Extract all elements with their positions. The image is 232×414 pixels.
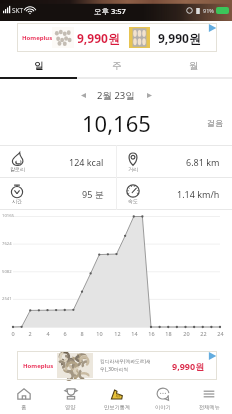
staticText: 걸음 xyxy=(207,118,223,128)
button[interactable]: 만보기통계 xyxy=(94,381,140,414)
button[interactable]: 시간 xyxy=(0,178,116,209)
staticText: 이야기 xyxy=(155,404,171,411)
staticText: 124 kcal xyxy=(69,156,104,168)
staticText: 월 xyxy=(189,60,199,72)
button[interactable]: 칼로리 xyxy=(0,146,116,177)
button[interactable]: Homeplus xyxy=(17,23,217,52)
staticText: 95 분 xyxy=(82,188,104,200)
staticText: 2월 23일 xyxy=(97,89,135,102)
staticText: 우)_30마리씩 xyxy=(100,366,129,373)
button[interactable]: 홈 xyxy=(0,381,47,414)
button[interactable]: 이야기 xyxy=(140,381,186,414)
staticText: 4 xyxy=(46,330,50,337)
staticText: 9,990원 xyxy=(158,30,201,46)
staticText: 칼로리 xyxy=(10,166,25,172)
staticText: 만보기통계 xyxy=(104,404,130,411)
staticText: 14 xyxy=(131,330,138,337)
staticText: 7624 xyxy=(2,241,12,247)
staticText: 일 xyxy=(34,60,44,72)
staticText: 킹디라새우(에콰도르)새 xyxy=(100,358,151,365)
button[interactable]: 월 xyxy=(155,52,232,77)
button[interactable]: 전체메뉴 xyxy=(186,381,232,414)
staticText: Homeplus xyxy=(22,34,53,42)
staticText: 22 xyxy=(200,330,207,337)
staticText: 2541 xyxy=(2,296,12,302)
staticText: 91% xyxy=(203,7,214,14)
button[interactable]: Homeplus xyxy=(17,351,217,380)
staticText: 18 xyxy=(165,330,172,337)
staticText: 5082 xyxy=(2,269,12,275)
staticText: 12 xyxy=(114,330,121,337)
staticText: 24 xyxy=(217,330,224,337)
staticText: SKT xyxy=(12,6,24,15)
staticText: 전체메뉴 xyxy=(199,404,220,411)
staticText: 주 xyxy=(112,60,122,72)
staticText: 홈 xyxy=(21,404,27,411)
staticText: 0 xyxy=(11,330,15,337)
staticText: 9,990원 xyxy=(172,360,205,372)
button[interactable]: Next day xyxy=(141,87,157,103)
staticText: 16 xyxy=(148,330,155,337)
staticText: 시간 xyxy=(12,198,22,204)
button[interactable]: Previous day xyxy=(75,87,91,103)
staticText: Homeplus xyxy=(23,362,54,370)
staticText: 9,990원 xyxy=(77,30,120,46)
staticText: 20 xyxy=(183,330,190,337)
staticText: 속도 xyxy=(128,198,138,204)
button[interactable]: 거리 xyxy=(116,146,232,177)
staticText: 2 xyxy=(28,330,32,337)
staticText: 8 xyxy=(80,330,84,337)
button[interactable]: 주 xyxy=(78,52,155,77)
button[interactable]: 영양 xyxy=(47,381,94,414)
staticText: 6.81 km xyxy=(186,156,220,168)
staticText: 영양 xyxy=(65,404,76,411)
staticText: 10 xyxy=(96,330,103,337)
button[interactable]: 속도 xyxy=(116,178,232,209)
staticText: 6 xyxy=(63,330,67,337)
staticText: 거리 xyxy=(128,166,138,172)
staticText: 10165 xyxy=(2,213,14,219)
staticText: 10,165 xyxy=(82,108,151,137)
staticText: 오후 3:57 xyxy=(94,6,126,16)
staticText: 1.14 km/h xyxy=(177,188,220,200)
button[interactable]: 일 xyxy=(0,52,78,77)
